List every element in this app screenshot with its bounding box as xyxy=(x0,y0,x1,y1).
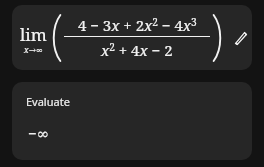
staticText: x→∞ xyxy=(24,44,43,56)
staticText: x2 + 4x − 2 xyxy=(101,40,173,60)
staticText: −∞ xyxy=(28,123,50,143)
button[interactable]: Edit expression xyxy=(229,25,252,51)
staticText: 4 − 3x + 2x2 − 4x3 xyxy=(78,15,197,35)
staticText: Evaluate xyxy=(26,94,70,109)
staticText: lim xyxy=(20,23,47,46)
button[interactable]: Evaluate xyxy=(12,82,252,160)
button[interactable]: lim xyxy=(12,5,252,70)
